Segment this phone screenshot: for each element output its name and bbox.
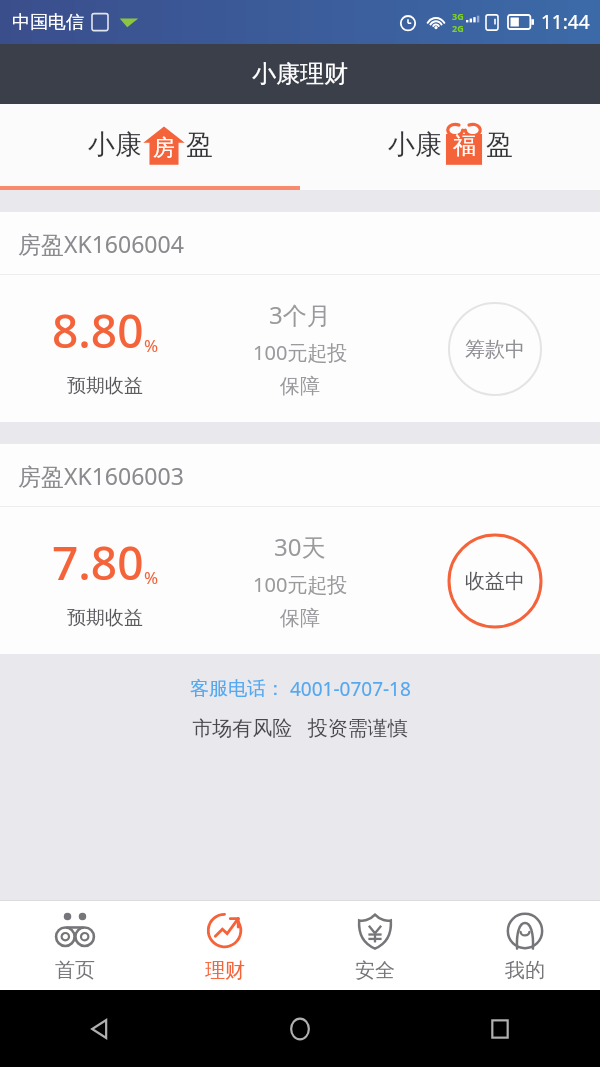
staticText: 4001-0707-18 xyxy=(285,676,411,702)
button[interactable]: 房盈XK1606004 xyxy=(0,212,600,422)
staticText: 我的 xyxy=(505,958,545,983)
staticText: 保障 xyxy=(280,606,320,631)
staticText: 理财 xyxy=(205,958,245,983)
staticText: 收益中 xyxy=(465,569,525,594)
staticText: 盈 xyxy=(486,128,513,162)
staticText: 中国电信 xyxy=(12,11,84,34)
staticText: 首页 xyxy=(55,958,95,983)
staticText: 盈 xyxy=(186,128,213,162)
staticText: % xyxy=(144,334,159,357)
staticText: 2G xyxy=(452,22,464,34)
button[interactable]: 理财 xyxy=(150,901,300,990)
staticText: 市场有风险 投资需谨慎 xyxy=(192,714,408,741)
button[interactable]: Recent apps xyxy=(400,990,600,1067)
button[interactable]: 小康 xyxy=(0,104,300,186)
staticText: 3G xyxy=(452,10,464,22)
button[interactable]: Home xyxy=(200,990,400,1067)
staticText: % xyxy=(144,566,159,589)
staticText: 3个月 xyxy=(269,298,331,331)
button[interactable]: Back xyxy=(0,990,200,1067)
button[interactable]: 安全 xyxy=(300,901,450,990)
staticText: 安全 xyxy=(355,958,395,983)
staticText: 8.80 xyxy=(52,299,144,362)
staticText: 100元起投 xyxy=(253,571,348,598)
button[interactable]: 收益中 xyxy=(447,533,543,629)
button[interactable]: 小康 xyxy=(300,104,600,186)
staticText: 筹款中 xyxy=(465,337,525,362)
staticText: 100元起投 xyxy=(253,339,348,366)
staticText: 房盈XK1606004 xyxy=(18,228,184,259)
staticText: 预期收益 xyxy=(67,374,143,398)
staticText: 7.80 xyxy=(52,531,144,594)
staticText: 房盈XK1606003 xyxy=(18,460,184,491)
staticText: 小康 xyxy=(388,128,442,162)
button[interactable]: 筹款中 xyxy=(447,301,543,397)
button[interactable]: 我的 xyxy=(450,901,600,990)
button[interactable]: 客服电话： xyxy=(190,676,411,702)
staticText: 房 xyxy=(153,134,175,162)
staticText: 保障 xyxy=(280,374,320,399)
button[interactable]: 首页 xyxy=(0,901,150,990)
staticText: 11:44 xyxy=(541,9,590,35)
staticText: 预期收益 xyxy=(67,606,143,630)
staticText: 福 xyxy=(453,131,476,160)
staticText: 30天 xyxy=(274,530,326,563)
button[interactable]: 房盈XK1606003 xyxy=(0,444,600,654)
staticText: 客服电话： xyxy=(190,677,285,701)
staticText: 小康 xyxy=(88,128,142,162)
staticText: 小康理财 xyxy=(252,59,348,89)
